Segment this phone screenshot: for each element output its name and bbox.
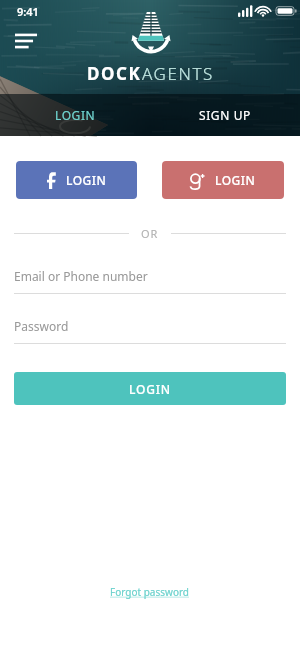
button[interactable]: Login with Facebook: [16, 161, 137, 199]
button[interactable]: LOGIN: [0, 94, 150, 136]
staticText: Forgot password: [110, 585, 190, 599]
staticText: LOGIN: [55, 107, 96, 123]
button[interactable]: Login with Google Plus: [162, 161, 284, 199]
staticText: Email or Phone number: [14, 268, 148, 284]
staticText: SIGN UP: [199, 107, 251, 123]
staticText: AGENTS: [142, 62, 214, 85]
button[interactable]: SIGN UP: [150, 94, 300, 136]
staticText: LOGIN: [66, 172, 107, 188]
staticText: LOGIN: [129, 381, 171, 397]
button[interactable]: Email or Phone number: [14, 268, 286, 294]
staticText: LOGIN: [215, 172, 256, 188]
staticText: Password: [14, 318, 69, 334]
button[interactable]: LOGIN: [14, 372, 286, 405]
staticText: 9:41: [17, 4, 39, 19]
button[interactable]: Menu: [8, 26, 44, 56]
button[interactable]: Forgot password: [104, 583, 196, 601]
button[interactable]: Password: [14, 318, 286, 344]
staticText: OR: [141, 226, 159, 241]
staticText: DOCK: [87, 62, 142, 85]
